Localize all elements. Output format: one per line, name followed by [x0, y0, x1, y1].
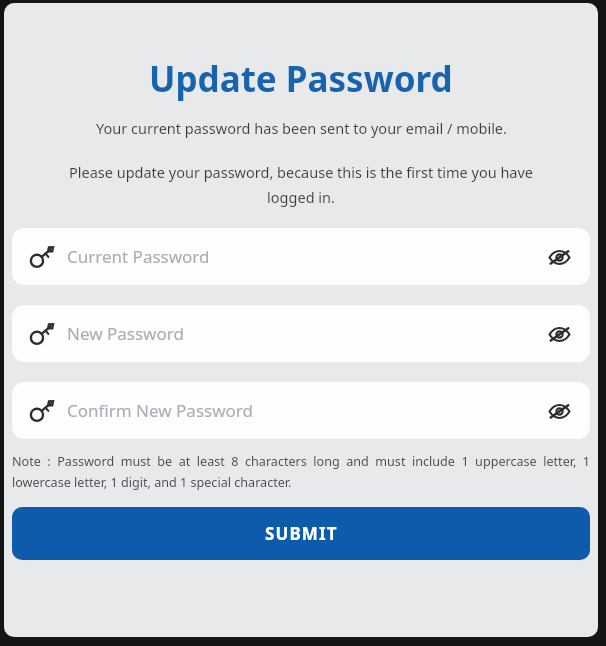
- button[interactable]: Show password: [536, 388, 582, 434]
- button[interactable]: New Password: [12, 305, 590, 362]
- staticText: New Password: [67, 322, 536, 345]
- staticText: Confirm New Password: [67, 399, 536, 422]
- staticText: Update Password: [149, 55, 453, 103]
- button[interactable]: Current Password: [12, 228, 590, 285]
- staticText: Note : Password must be at least 8 chara…: [12, 453, 590, 491]
- staticText: Current Password: [67, 245, 536, 268]
- button[interactable]: Show password: [536, 311, 582, 357]
- button[interactable]: SUBMIT: [12, 507, 590, 560]
- staticText: SUBMIT: [265, 522, 338, 545]
- button[interactable]: Show password: [536, 234, 582, 280]
- staticText: Your current password has been sent to y…: [96, 118, 507, 138]
- staticText: Please update your password, because thi…: [48, 162, 554, 207]
- button[interactable]: Confirm New Password: [12, 382, 590, 439]
